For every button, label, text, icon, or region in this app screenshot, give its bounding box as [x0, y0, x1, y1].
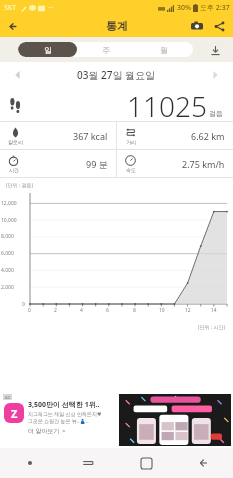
button[interactable]: Home — [117, 448, 175, 478]
staticText: 6.62 km — [191, 130, 225, 142]
staticText: 4 — [80, 307, 83, 314]
button[interactable]: AD — [0, 392, 233, 448]
button[interactable]: Camera — [187, 16, 207, 36]
button[interactable]: 칼로리 — [0, 122, 116, 149]
staticText: ··· — [48, 3, 54, 13]
button[interactable]: 주 — [77, 42, 135, 57]
staticText: 시간 — [9, 167, 19, 173]
button[interactable]: More — [0, 448, 59, 478]
staticText: 8,000 — [1, 233, 14, 240]
staticText: 오후 2:37 — [200, 3, 230, 13]
staticText: Z — [11, 406, 18, 421]
staticText: (단위 : 걸음) — [6, 182, 33, 189]
staticText: 통계 — [106, 19, 128, 33]
button[interactable]: Recents — [59, 448, 117, 478]
button[interactable]: Previous day — [8, 65, 28, 85]
button[interactable]: Download — [205, 40, 225, 60]
staticText: 주 — [102, 45, 110, 55]
staticText: 10 — [159, 307, 165, 314]
button[interactable]: 시간 — [0, 150, 116, 177]
staticText: AD — [5, 395, 11, 400]
staticText: 그곳은 쇼핑간 높은 뷰..👗.. — [28, 418, 89, 425]
staticText: 지그재그는 제일 신상 언제든지♥ — [28, 411, 102, 418]
staticText: 14 — [211, 307, 217, 314]
staticText: 03월 27일 월요일 — [77, 68, 156, 82]
staticText: 367 kcal — [73, 130, 108, 142]
staticText: 99 분 — [86, 158, 108, 170]
staticText: 6,000 — [1, 250, 14, 257]
staticText: 12 — [185, 307, 191, 314]
button[interactable]: 일 — [18, 42, 77, 57]
staticText: 거리 — [126, 139, 136, 145]
staticText: 속도 — [126, 167, 136, 173]
staticText: SKT — [4, 3, 17, 13]
button[interactable]: 속도 — [117, 150, 233, 177]
staticText: 6 — [106, 307, 109, 314]
staticText: 4,000 — [1, 267, 14, 274]
staticText: 칼로리 — [8, 139, 23, 145]
staticText: 걸음 — [209, 109, 223, 118]
staticText: (단위 : 시간) — [0, 324, 225, 331]
staticText: 2,000 — [1, 284, 14, 291]
staticText: 8 — [133, 307, 136, 314]
button[interactable]: Next day — [205, 65, 225, 85]
staticText: 0 — [28, 307, 31, 314]
button[interactable]: Back — [2, 15, 24, 37]
button[interactable]: Back — [175, 448, 233, 478]
staticText: 3,500만이 선택한 1위.. — [28, 400, 100, 410]
staticText: 10,000 — [1, 217, 17, 224]
staticText: 월 — [160, 45, 168, 55]
staticText: 2 — [54, 307, 57, 314]
staticText: 11025 — [127, 87, 207, 121]
staticText: 0 — [22, 301, 25, 308]
staticText: 2.75 km/h — [182, 158, 225, 170]
button[interactable]: Share — [209, 16, 229, 36]
button[interactable]: 거리 — [117, 122, 233, 149]
staticText: 30% — [177, 3, 191, 13]
button[interactable]: 월 — [135, 42, 193, 57]
staticText: 12,000 — [1, 200, 17, 207]
staticText: 일 — [44, 45, 52, 55]
staticText: > — [62, 427, 66, 435]
staticText: 더 알아보기 — [28, 427, 60, 435]
